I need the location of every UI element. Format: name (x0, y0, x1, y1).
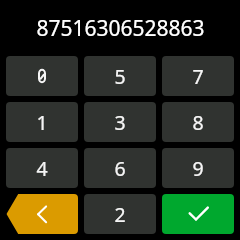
button[interactable]: 7 (162, 56, 234, 96)
staticText: 6 (114, 155, 126, 182)
staticText: 2 (114, 201, 126, 228)
button[interactable]: 3 (84, 102, 156, 142)
button[interactable]: 4 (6, 148, 78, 188)
button[interactable]: 5 (84, 56, 156, 96)
staticText: 87516306528863 (36, 14, 205, 43)
button[interactable]: 6 (84, 148, 156, 188)
button[interactable]: Confirm (162, 194, 234, 234)
button[interactable]: 9 (162, 148, 234, 188)
button[interactable]: Backspace (6, 194, 78, 234)
staticText: 5 (114, 63, 126, 90)
button[interactable]: 2 (84, 194, 156, 234)
staticText: 4 (36, 155, 48, 182)
button[interactable]: 1 (6, 102, 78, 142)
staticText: 9 (192, 155, 204, 182)
staticText: 7 (192, 63, 204, 90)
staticText: 8 (192, 109, 204, 136)
button[interactable]: 87516306528863 (0, 0, 240, 56)
staticText: 1 (36, 109, 48, 136)
staticText: 3 (114, 109, 126, 136)
button[interactable]: 8 (162, 102, 234, 142)
button[interactable] (6, 56, 78, 96)
